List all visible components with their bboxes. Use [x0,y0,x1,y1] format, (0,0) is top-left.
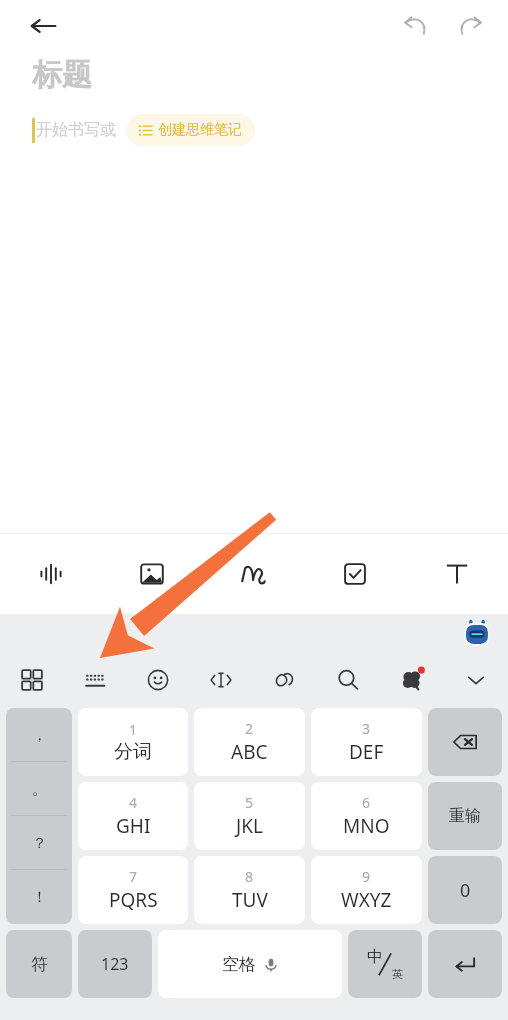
staticText: 8 [245,867,254,886]
button[interactable]: 创建思维笔记 [126,114,255,146]
staticText: 5 [245,793,254,812]
button[interactable]: 空格 [158,930,342,998]
button[interactable]: 3 [311,708,422,776]
staticText: 重输 [449,806,481,826]
button[interactable]: 中 [348,930,422,998]
button[interactable]: 符 [6,930,72,998]
staticText: DEF [349,739,384,765]
button[interactable]: Backspace [428,708,502,776]
staticText: ！ [32,888,47,907]
staticText: 123 [101,953,129,975]
button[interactable]: Voice [0,534,101,614]
button[interactable]: Back [20,3,66,49]
staticText: GHI [116,813,151,839]
staticText: ， [32,726,47,745]
button[interactable]: Emoji [126,652,189,708]
button[interactable]: 7 [78,856,188,924]
staticText: 9 [362,867,371,886]
staticText: TUV [232,887,268,913]
button[interactable]: Move cursor [189,652,252,708]
staticText: 6 [362,793,371,812]
staticText: 7 [129,867,138,886]
button[interactable]: ？ [6,816,72,870]
button[interactable]: 9 [311,856,422,924]
button[interactable]: Text style [406,534,508,614]
button[interactable]: 6 [311,782,422,850]
staticText: ABC [231,739,268,765]
staticText: ？ [32,834,47,853]
button[interactable]: 0 [428,856,502,924]
button[interactable]: Hide keyboard [444,652,508,708]
button[interactable]: 4 [78,782,188,850]
staticText: 创建思维笔记 [158,121,242,139]
button[interactable]: Redo [450,5,492,47]
staticText: 空格 [222,954,256,975]
staticText: 3 [362,719,371,738]
button[interactable]: 2 [194,708,305,776]
staticText: 符 [31,954,48,975]
button[interactable]: Image [101,534,202,614]
staticText: 分词 [114,740,152,764]
button[interactable]: Checklist [304,534,406,614]
button[interactable]: 123 [78,930,152,998]
button[interactable]: Keyboard [63,652,126,708]
staticText: MNO [343,813,390,839]
staticText: 1 [129,720,138,739]
staticText: 0 [460,878,471,903]
button[interactable]: Clipboard [252,652,316,708]
staticText: 2 [245,719,254,738]
button[interactable]: 重输 [428,782,502,850]
button[interactable]: 。 [6,762,72,816]
staticText: PQRS [109,887,158,913]
button[interactable]: 5 [194,782,305,850]
button[interactable]: ， [6,708,72,762]
button[interactable]: Undo [394,5,436,47]
button[interactable]: Theme [380,652,444,708]
staticText: JKL [236,813,263,839]
staticText: 中 [367,947,383,967]
button[interactable]: Handwriting [202,534,304,614]
button[interactable]: Search [316,652,380,708]
staticText: 标题 [32,56,92,94]
staticText: 开始书写或 [36,120,116,140]
staticText: WXYZ [341,887,392,913]
button[interactable]: 8 [194,856,305,924]
staticText: 4 [129,793,138,812]
button[interactable]: Assistant [460,616,494,650]
button[interactable]: ！ [6,870,72,924]
button[interactable]: Enter [428,930,502,998]
button[interactable]: 1 [78,708,188,776]
staticText: 。 [32,780,47,799]
staticText: 英 [392,967,403,981]
button[interactable]: Keyboard layouts [0,652,63,708]
